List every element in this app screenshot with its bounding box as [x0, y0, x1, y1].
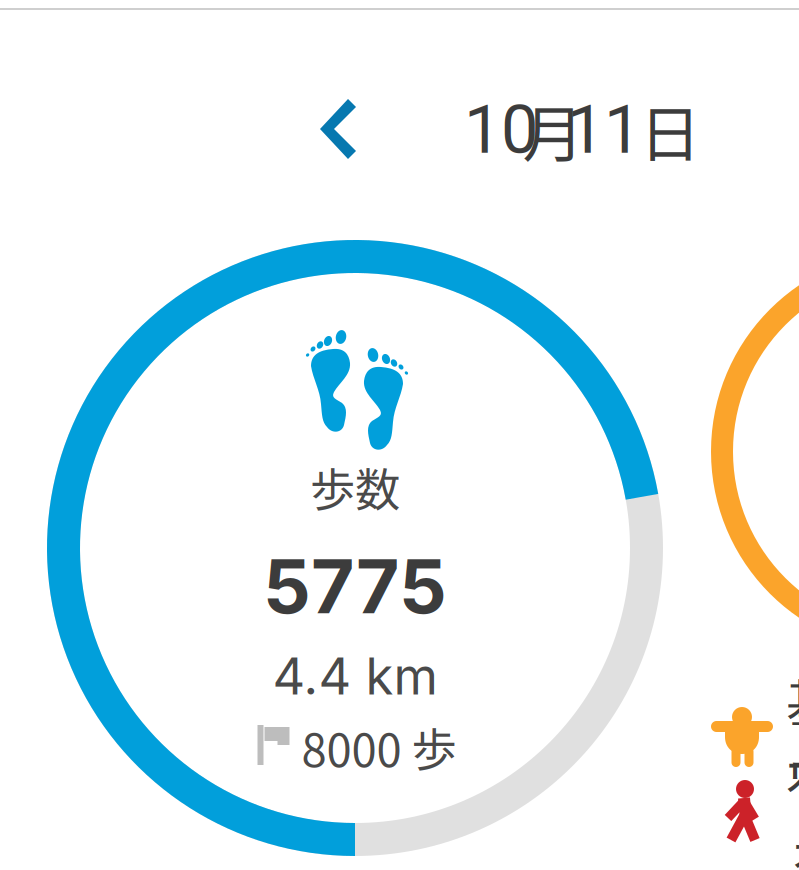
staticText: 5775	[263, 541, 447, 631]
staticText: 4.4 km	[272, 645, 437, 707]
staticText: ウォ	[786, 737, 799, 870]
staticText: 基本	[786, 664, 799, 810]
button[interactable]: Back	[320, 95, 380, 165]
staticText: 8000 歩	[301, 714, 456, 780]
staticText: 歩数	[310, 454, 400, 520]
staticText: 10	[464, 91, 538, 169]
staticText: 日	[639, 86, 700, 174]
staticText: 11	[567, 91, 641, 169]
staticText: 月	[522, 86, 583, 174]
